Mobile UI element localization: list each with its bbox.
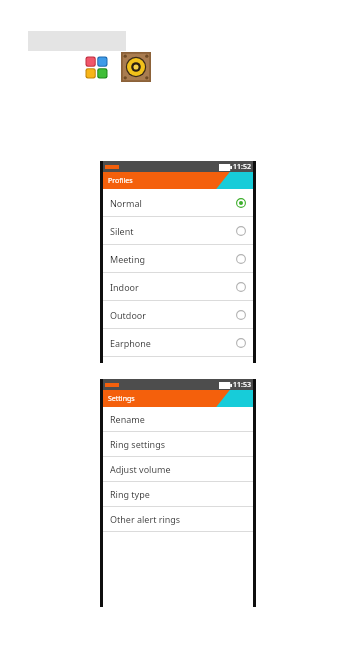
button[interactable]: Profiles application — [84, 55, 109, 80]
button[interactable]: Adjust volume — [103, 457, 253, 482]
staticText: Rename — [110, 413, 145, 425]
button[interactable]: Normal — [103, 189, 253, 217]
button[interactable]: Ring settings — [103, 432, 253, 457]
button[interactable]: Rename — [103, 407, 253, 432]
staticText: Ring type — [110, 488, 150, 500]
staticText: Normal — [110, 197, 142, 209]
staticText: Profiles — [108, 176, 133, 186]
button[interactable]: Ring type — [103, 482, 253, 507]
staticText: Outdoor — [110, 309, 146, 321]
staticText: Other alert rings — [110, 513, 181, 525]
button[interactable]: Earphone — [103, 329, 253, 357]
staticText: Silent — [110, 225, 134, 237]
staticText: Meeting — [110, 253, 145, 265]
staticText: 11:52 — [233, 162, 251, 172]
button[interactable]: Ring settings application — [121, 52, 151, 82]
button[interactable]: Meeting — [103, 245, 253, 273]
staticText: Earphone — [110, 337, 151, 349]
staticText: Settings — [108, 394, 135, 404]
staticText: Ring settings — [110, 438, 165, 450]
staticText: Adjust volume — [110, 463, 171, 475]
staticText: Indoor — [110, 281, 139, 293]
button[interactable]: Other alert rings — [103, 507, 253, 532]
button[interactable]: Outdoor — [103, 301, 253, 329]
button[interactable]: Silent — [103, 217, 253, 245]
button[interactable]: Indoor — [103, 273, 253, 301]
staticText: 11:53 — [233, 380, 251, 390]
